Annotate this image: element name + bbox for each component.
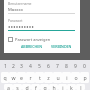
- staticText: i: [66, 74, 68, 81]
- staticText: 3: [20, 63, 23, 70]
- staticText: 4: [29, 63, 32, 70]
- staticText: 2: [12, 63, 15, 70]
- button[interactable]: s: [13, 84, 22, 90]
- button[interactable]: u: [53, 72, 62, 83]
- staticText: VERBINDEN: [51, 44, 72, 49]
- button[interactable]: z: [44, 72, 53, 83]
- button[interactable]: g: [40, 84, 49, 90]
- staticText: z: [47, 74, 50, 81]
- staticText: Benutzername: [8, 1, 32, 6]
- staticText: 7: [56, 63, 59, 70]
- button[interactable]: f: [31, 84, 40, 90]
- staticText: u: [56, 74, 60, 81]
- button[interactable]: VERBINDEN: [49, 43, 74, 50]
- staticText: k: [70, 84, 73, 90]
- staticText: 6: [47, 63, 50, 70]
- staticText: 1: [4, 63, 7, 70]
- staticText: 5: [38, 63, 41, 70]
- staticText: r: [29, 74, 32, 81]
- button[interactable]: 9: [71, 62, 80, 71]
- button[interactable]: r: [26, 72, 35, 83]
- button[interactable]: 0: [80, 62, 89, 71]
- staticText: j: [62, 84, 64, 90]
- staticText: e: [20, 74, 23, 81]
- staticText: l: [80, 84, 82, 90]
- staticText: s: [16, 84, 19, 90]
- button[interactable]: 3: [17, 62, 26, 71]
- button[interactable]: [8, 24, 75, 30]
- staticText: 8: [65, 63, 68, 70]
- button[interactable]: l: [76, 84, 85, 90]
- staticText: o: [74, 74, 78, 81]
- button[interactable]: 5: [35, 62, 44, 71]
- button[interactable]: ABBRECHEN: [19, 43, 45, 50]
- button[interactable]: q: [1, 72, 9, 83]
- button[interactable]: t: [35, 72, 44, 83]
- button[interactable]: h: [49, 84, 58, 90]
- staticText: ABBRECHEN: [21, 44, 43, 49]
- button[interactable]: Passwort anzeigen: [8, 35, 51, 43]
- staticText: 9: [74, 63, 77, 70]
- staticText: a: [7, 84, 10, 90]
- button[interactable]: 7: [53, 62, 62, 71]
- button[interactable]: p: [80, 72, 89, 83]
- button[interactable]: i: [62, 72, 71, 83]
- button[interactable]: 8: [62, 62, 71, 71]
- button[interactable]: o: [71, 72, 80, 83]
- staticText: Passwort anzeigen: [15, 37, 51, 42]
- button[interactable]: j: [58, 84, 67, 90]
- button[interactable]: 6: [44, 62, 53, 71]
- button[interactable]: e: [17, 72, 26, 83]
- staticText: f: [35, 84, 37, 90]
- button[interactable]: 4: [26, 62, 35, 71]
- staticText: h: [52, 84, 56, 90]
- button[interactable]: Maxxxx: [8, 7, 75, 13]
- staticText: q: [3, 74, 7, 81]
- button[interactable]: k: [67, 84, 76, 90]
- staticText: Maxxxx: [8, 7, 24, 13]
- staticText: d: [25, 84, 29, 90]
- button[interactable]: d: [22, 84, 31, 90]
- button[interactable]: w: [9, 72, 17, 83]
- staticText: w: [11, 74, 16, 81]
- button[interactable]: 1: [1, 62, 9, 71]
- staticText: p: [83, 74, 87, 81]
- staticText: g: [43, 84, 47, 90]
- staticText: 0: [83, 63, 86, 70]
- button[interactable]: a: [4, 84, 13, 90]
- staticText: t: [39, 74, 41, 81]
- button[interactable]: 2: [9, 62, 17, 71]
- staticText: Passwort: [8, 18, 23, 23]
